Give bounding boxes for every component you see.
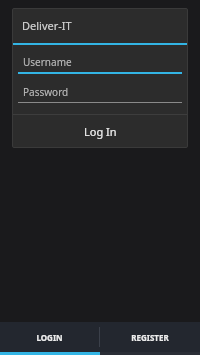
- staticText: Password: [23, 85, 69, 99]
- staticText: Deliver-IT: [22, 18, 72, 33]
- staticText: REGISTER: [131, 332, 169, 343]
- button[interactable]: Log In: [12, 115, 188, 148]
- staticText: Log In: [84, 124, 117, 139]
- staticText: Username: [23, 55, 72, 69]
- button[interactable]: LOGIN: [0, 322, 99, 352]
- staticText: LOGIN: [36, 332, 63, 343]
- button[interactable]: REGISTER: [100, 322, 200, 352]
- button[interactable]: Username: [18, 54, 182, 74]
- button[interactable]: Password: [18, 84, 182, 103]
